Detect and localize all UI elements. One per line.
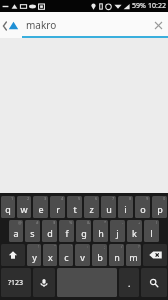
staticText: h [98,227,104,239]
staticText: v [80,251,85,263]
button[interactable]: 0 [152,196,167,218]
staticText: 8 [129,196,132,201]
staticText: 7 [112,196,115,201]
staticText: r [56,203,60,215]
staticText: " [54,244,56,249]
staticText: m [129,251,138,263]
button[interactable]: Back [0,12,22,38]
staticText: 1 [11,196,14,201]
staticText: d [47,227,53,239]
staticText: c [64,251,69,263]
staticText: ; [104,244,106,249]
button[interactable]: * [93,220,108,242]
button[interactable]: 2 [17,196,31,218]
button[interactable]: 6 [84,196,99,218]
staticText: j [116,227,119,239]
staticText: 2 [27,196,30,201]
button[interactable]: ; [92,244,107,266]
staticText: y [32,251,37,263]
button[interactable]: 3 [33,196,48,218]
staticText: ' [71,244,72,249]
staticText: makro [26,18,57,32]
button[interactable]: @ [9,220,23,242]
staticText: x [48,251,53,263]
button[interactable]: . [119,268,139,297]
staticText: f [65,227,69,239]
staticText: ?123 [8,278,24,288]
button[interactable]: Search [141,268,167,297]
staticText: * [104,220,107,225]
staticText: ( [156,220,158,225]
staticText: 59% [132,1,146,11]
button[interactable]: 8 [118,196,133,218]
button[interactable]: ( [144,220,159,242]
staticText: . [128,277,131,289]
button[interactable]: ' [59,244,73,266]
button[interactable]: ?123 [1,268,31,297]
staticText: ! [38,244,40,249]
staticText: : [87,244,89,249]
staticText: ? [138,244,140,249]
button[interactable]: 7 [101,196,116,218]
staticText: e [38,203,44,215]
staticText: n [114,251,120,263]
staticText: 3 [44,196,47,201]
staticText: s [30,227,35,239]
button[interactable]: Voice input [33,268,55,297]
staticText: a [13,227,19,239]
staticText: b [97,251,103,263]
staticText: # [36,220,39,225]
staticText: p [157,203,163,215]
staticText: & [87,220,90,225]
staticText: i [124,203,127,215]
staticText: $ [53,220,56,225]
staticText: 6 [95,196,98,201]
staticText: 10:22 [148,1,166,11]
staticText: q [5,203,11,215]
staticText: g [81,227,87,239]
staticText: 5 [78,196,81,201]
staticText: + [138,220,141,225]
button[interactable]: Backspace [143,244,167,266]
button[interactable]: 5 [67,196,82,218]
staticText: u [106,203,112,215]
button[interactable]: ? [126,244,141,266]
staticText: o [140,203,146,215]
staticText: 9 [146,196,149,201]
staticText: - [122,220,124,225]
staticText: 0 [163,196,166,201]
button[interactable]: ! [27,244,41,266]
staticText: % [69,220,73,225]
button[interactable]: - [110,220,125,242]
staticText: t [73,203,77,215]
staticText: / [121,244,123,249]
button[interactable]: : [75,244,90,266]
staticText: 4 [61,196,64,201]
button[interactable]: & [76,220,91,242]
button[interactable]: # [25,220,40,242]
button[interactable]: % [59,220,74,242]
button[interactable]: Shift [1,244,25,266]
staticText: w [20,203,28,215]
button[interactable]: Clear query [148,12,168,38]
button[interactable]: $ [42,220,57,242]
button[interactable]: 4 [50,196,65,218]
button[interactable]: 9 [135,196,150,218]
staticText: k [132,227,137,239]
button[interactable]: + [127,220,142,242]
button[interactable]: 1 [1,196,15,218]
staticText: z [89,203,94,215]
button[interactable]: / [109,244,124,266]
staticText: l [150,227,153,239]
staticText: @ [18,220,22,225]
button[interactable]: " [43,244,57,266]
